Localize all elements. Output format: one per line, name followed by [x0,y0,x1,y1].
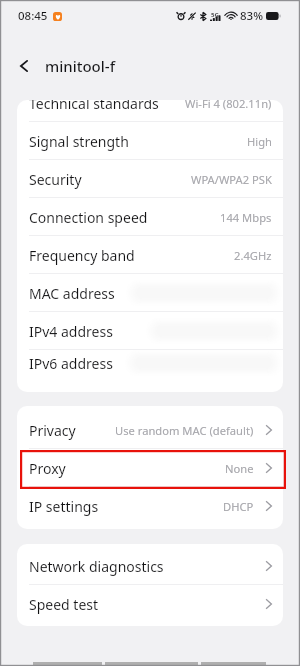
staticText: Proxy [29,459,66,478]
staticText: Privacy [29,421,76,440]
staticText: 2.4GHz [234,248,272,263]
button[interactable]: Privacy [17,411,283,449]
staticText: Use random MAC (default) [115,423,254,438]
staticText: 83% [240,8,263,24]
staticText: IPv4 address [29,322,113,341]
button[interactable]: IPv4 address [17,312,283,350]
staticText: None [225,461,254,476]
button[interactable]: Frequency band [17,236,283,274]
staticText: 5G [211,11,219,19]
staticText: IPv6 address [29,354,113,373]
button[interactable]: Connection speed [17,198,283,236]
button[interactable]: Signal strength [17,122,283,160]
staticText: 144 Mbps [220,210,272,225]
button[interactable]: Back [13,55,35,77]
button[interactable]: IP settings [17,487,283,525]
button[interactable]: MAC address [17,274,283,312]
staticText: Technical standards [29,100,159,113]
staticText: Signal strength [29,132,129,151]
staticText: 08:45 [18,8,48,24]
button[interactable]: Proxy [17,449,283,487]
button[interactable]: Speed test [17,585,283,623]
button[interactable]: Technical standards [17,100,283,122]
button[interactable]: Security [17,160,283,198]
button[interactable]: IPv6 address [17,350,283,376]
staticText: MAC address [29,284,115,303]
staticText: High [247,134,272,149]
staticText: Wi-Fi 4 (802.11n) [185,100,272,111]
staticText: Connection speed [29,208,148,227]
button[interactable]: Network diagnostics [17,547,283,585]
staticText: Security [29,170,82,189]
staticText: minitool-f [45,56,116,76]
staticText: Speed test [29,595,99,614]
staticText: WPA/WPA2 PSK [191,172,272,187]
staticText: Network diagnostics [29,557,164,576]
staticText: DHCP [223,499,254,514]
staticText: Frequency band [29,246,135,265]
staticText: IP settings [29,497,99,516]
